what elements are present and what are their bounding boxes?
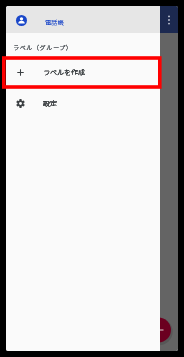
staticText: 設定 xyxy=(43,98,57,108)
staticText: ラベルを作成 xyxy=(43,67,85,77)
staticText: 設定 xyxy=(43,98,57,108)
staticText: 設定 xyxy=(43,98,57,108)
staticText: ラベルを作成 xyxy=(43,67,85,77)
staticText: ラベルを作成 xyxy=(43,67,85,77)
staticText: ラベル（グループ） xyxy=(13,43,72,52)
staticText: ラベル（グループ） xyxy=(13,43,72,52)
staticText: 設定 xyxy=(43,98,57,108)
staticText: 電話帳 xyxy=(45,18,64,27)
staticText: 電話帳 xyxy=(45,18,64,27)
staticText: ラベルを作成 xyxy=(43,67,85,77)
staticText: 設定 xyxy=(43,98,57,108)
staticText: ラベルを作成 xyxy=(43,67,85,77)
button[interactable]: 設定 xyxy=(6,88,160,118)
staticText: 設定 xyxy=(43,98,57,108)
button[interactable]: ラベルを作成 xyxy=(6,57,160,87)
button[interactable]: Create contact xyxy=(146,318,171,343)
staticText: ラベル（グループ） xyxy=(13,43,72,52)
staticText: ラベルを作成 xyxy=(43,67,85,77)
staticText: 電話帳 xyxy=(45,18,64,27)
staticText: 電話帳 xyxy=(45,18,64,27)
staticText: 設定 xyxy=(43,98,57,108)
staticText: ラベルを作成 xyxy=(43,67,85,77)
staticText: ラベル（グループ） xyxy=(13,43,72,52)
staticText: ラベル（グループ） xyxy=(13,43,72,52)
staticText: ラベル（グループ） xyxy=(13,43,72,52)
staticText: 電話帳 xyxy=(45,18,64,27)
button[interactable]: More options xyxy=(160,6,178,33)
staticText: 設定 xyxy=(43,98,57,108)
staticText: 電話帳 xyxy=(45,18,64,27)
button[interactable]: 電話帳 xyxy=(6,6,160,33)
staticText: ラベル（グループ） xyxy=(13,43,72,52)
staticText: ラベル（グループ） xyxy=(13,43,72,52)
staticText: ラベルを作成 xyxy=(43,67,85,77)
